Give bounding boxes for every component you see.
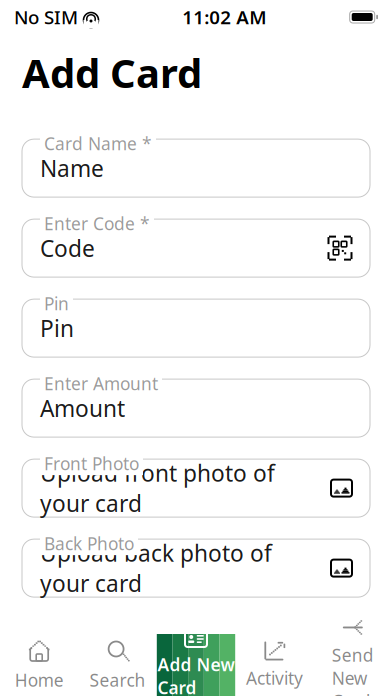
staticText: Add Card <box>22 46 202 99</box>
button[interactable]: Name <box>22 139 370 197</box>
staticText: Upload front photo of your card <box>40 458 275 518</box>
staticText: Amount <box>40 393 125 423</box>
staticText: 11:02 AM <box>182 5 266 29</box>
staticText: Front Photo <box>44 452 139 475</box>
staticText: Pin <box>44 292 69 315</box>
button[interactable]: Add New Card <box>157 634 235 696</box>
button[interactable]: Amount <box>22 379 370 437</box>
staticText: Activity <box>246 666 303 689</box>
staticText: Search <box>90 668 146 691</box>
button[interactable]: Home <box>0 634 78 696</box>
button[interactable]: Search <box>78 634 157 696</box>
staticText: Send New Card <box>332 643 374 696</box>
button[interactable]: Upload front photo of your card <box>22 459 370 517</box>
button[interactable]: Send New Card <box>314 634 392 696</box>
button[interactable]: Code <box>22 219 370 277</box>
button[interactable]: Upload back photo of your card <box>22 539 370 597</box>
staticText: Card Name * <box>44 132 152 155</box>
staticText: Enter Amount <box>44 372 158 395</box>
staticText: Upload back photo of your card <box>40 538 272 598</box>
staticText: Enter Code * <box>44 212 150 235</box>
staticText: Code <box>40 233 95 263</box>
staticText: No SIM <box>14 5 78 29</box>
button[interactable]: Pin <box>22 299 370 357</box>
button[interactable]: Activity <box>235 634 314 696</box>
staticText: Home <box>15 668 64 691</box>
staticText: Pin <box>40 313 74 343</box>
staticText: Back Photo <box>44 532 134 555</box>
staticText: Name <box>40 153 104 183</box>
staticText: Add New Card <box>157 653 234 696</box>
